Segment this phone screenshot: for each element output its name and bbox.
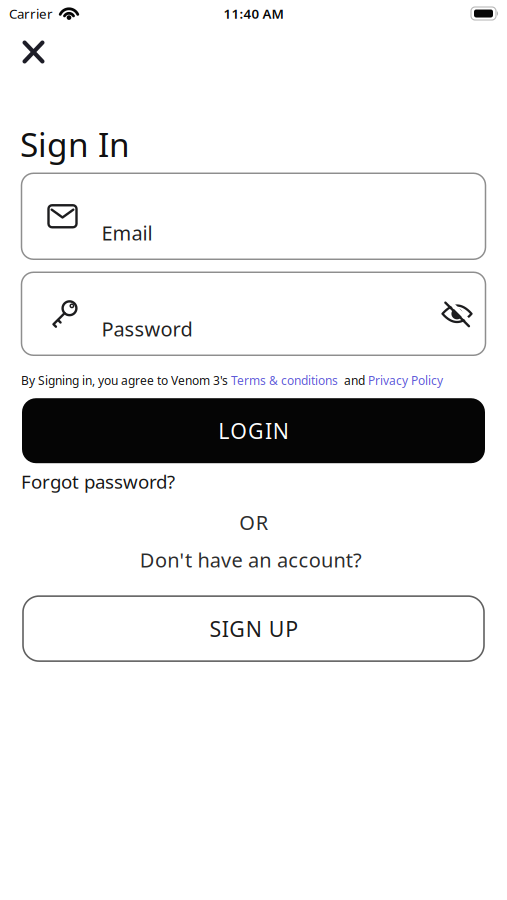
staticText: Privacy Policy	[368, 372, 443, 388]
staticText: 11:40 AM	[223, 5, 283, 22]
button[interactable]: Email	[21, 173, 485, 259]
button[interactable]: Terms & conditions	[231, 372, 338, 388]
button[interactable]: Password	[21, 272, 485, 355]
staticText: SIGN UP	[209, 614, 305, 643]
staticText: Password	[101, 315, 192, 342]
staticText: Sign In	[20, 122, 130, 166]
button[interactable]	[440, 301, 473, 327]
staticText: Carrier	[9, 5, 53, 22]
staticText: By Signing in, you agree to Venom 3's	[21, 372, 231, 388]
button[interactable]: LOGIN	[22, 398, 485, 463]
staticText: OR	[239, 509, 268, 536]
staticText: Forgot password?	[21, 469, 175, 494]
button[interactable]: SIGN UP	[23, 596, 484, 661]
staticText: and	[338, 372, 368, 388]
button[interactable]: Forgot password?	[21, 469, 175, 494]
button[interactable]: Privacy Policy	[368, 372, 443, 388]
staticText: Terms & conditions	[231, 372, 338, 388]
button[interactable]	[23, 41, 44, 63]
staticText: Don't have an account?	[140, 546, 367, 573]
staticText: Email	[101, 219, 152, 246]
staticText: LOGIN	[218, 416, 296, 445]
